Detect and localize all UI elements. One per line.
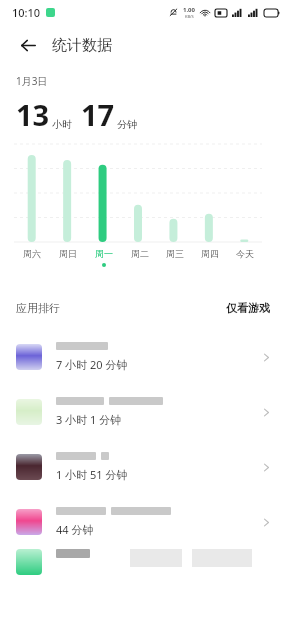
staticText: 周六: [23, 248, 41, 259]
other: Details: [256, 347, 276, 367]
staticText: 1 小时 51 分钟: [56, 467, 128, 482]
staticText: 3 小时 1 分钟: [56, 412, 122, 427]
staticText: 应用排行: [16, 301, 60, 315]
staticText: 44 分钟: [56, 522, 94, 537]
staticText: 1月3日: [16, 74, 48, 88]
button[interactable]: 44 分钟: [0, 494, 290, 549]
staticText: 周三: [166, 248, 184, 259]
button[interactable]: 仅看游戏: [222, 297, 274, 319]
staticText: 周一: [95, 248, 113, 259]
staticText: 1.00: [183, 6, 195, 14]
staticText: 17: [81, 95, 115, 134]
staticText: 13: [16, 95, 50, 134]
other: Details: [256, 457, 276, 477]
staticText: 小时: [52, 118, 72, 131]
other: Details: [256, 512, 276, 532]
other: Details: [256, 402, 276, 422]
staticText: KB/S: [185, 14, 194, 19]
staticText: 周二: [131, 248, 149, 259]
button[interactable]: 3 小时 1 分钟: [0, 384, 290, 439]
staticText: 分钟: [117, 118, 137, 131]
staticText: 仅看游戏: [226, 301, 270, 315]
staticText: 7 小时 20 分钟: [56, 357, 128, 372]
button[interactable]: Back: [14, 31, 42, 59]
button[interactable]: 7 小时 20 分钟: [0, 329, 290, 384]
staticText: 统计数据: [52, 36, 112, 55]
staticText: 10:10: [12, 5, 41, 20]
staticText: 周四: [201, 248, 219, 259]
staticText: 周日: [59, 248, 77, 259]
button[interactable]: [0, 549, 290, 589]
staticText: 今天: [236, 248, 254, 259]
button[interactable]: 1 小时 51 分钟: [0, 439, 290, 494]
